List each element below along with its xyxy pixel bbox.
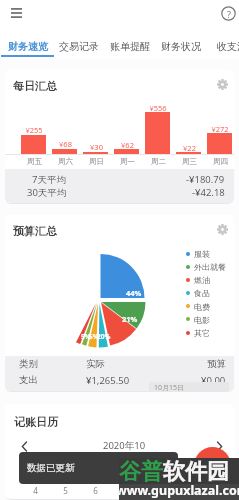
button[interactable]: 财务速览	[2, 36, 53, 57]
staticText: 周四	[213, 157, 228, 166]
staticText: 8	[153, 485, 158, 496]
staticText: 燃油	[194, 275, 210, 285]
staticText: 6	[93, 485, 98, 496]
staticText: ¥556	[149, 103, 167, 113]
staticText: 账单提醒	[110, 40, 150, 53]
button[interactable]: 收支清	[206, 36, 239, 57]
staticText: ¥62	[121, 140, 134, 150]
staticText: ¥1,265.50	[86, 374, 130, 387]
staticText: 10月15日	[154, 383, 185, 391]
staticText: 电费	[194, 302, 210, 312]
staticText: 类别	[19, 358, 38, 370]
staticText: 周五	[27, 157, 42, 166]
button[interactable]: 交易记录	[53, 36, 104, 57]
staticText: www.gupuxlazal.com	[116, 482, 239, 499]
staticText: 预算汇总	[13, 224, 57, 238]
button[interactable]: Menu	[6, 2, 27, 23]
staticText: 财务状况	[161, 40, 201, 53]
staticText: 财务速览	[8, 40, 48, 53]
staticText: 数据已更新	[27, 462, 75, 474]
staticText: 周三	[182, 157, 197, 166]
staticText: 支出	[19, 374, 38, 386]
staticText: 5%	[89, 332, 99, 341]
staticText: 9	[183, 485, 188, 496]
button[interactable]: Previous month	[13, 435, 35, 457]
staticText: ¥68	[59, 139, 72, 149]
button[interactable]: 数据已更新	[19, 452, 178, 484]
staticText: 预算	[207, 358, 226, 370]
staticText: 实际	[86, 358, 105, 370]
staticText: ¥0.00	[201, 374, 226, 387]
staticText: 服装	[194, 249, 210, 259]
staticText: 记账日历	[14, 415, 58, 429]
staticText: 5%	[81, 332, 91, 341]
button[interactable]: Add record	[194, 447, 231, 484]
staticText: 每日汇总	[13, 79, 57, 93]
staticText: 周一	[120, 157, 135, 166]
staticText: 2020年10	[103, 439, 146, 452]
staticText: 5	[63, 485, 68, 496]
button[interactable]: 账单提醒	[104, 36, 155, 57]
staticText: 谷普	[119, 458, 163, 486]
staticText: 交易记录	[59, 40, 99, 53]
staticText: 7	[123, 485, 128, 496]
staticText: 44%	[126, 288, 142, 298]
staticText: 周六	[58, 157, 73, 166]
staticText: ¥22	[183, 143, 196, 153]
staticText: 其它	[194, 328, 210, 338]
staticText: -¥180.79	[186, 173, 225, 186]
staticText: 10	[210, 485, 220, 496]
staticText: -¥42.18	[192, 186, 225, 199]
staticText: ¥255	[25, 125, 43, 135]
staticText: 电影	[194, 315, 210, 325]
button[interactable]: Next month	[208, 435, 230, 457]
staticText: 收支清	[217, 40, 239, 53]
staticText: 20%	[97, 332, 111, 341]
staticText: ¥272	[211, 124, 229, 134]
staticText: 软件园	[163, 458, 229, 486]
button[interactable]: Settings	[213, 75, 231, 93]
button[interactable]: 财务状况	[155, 36, 206, 57]
staticText: 周日	[89, 157, 104, 166]
staticText: ¥30	[90, 142, 103, 152]
staticText: 21%	[122, 314, 138, 324]
staticText: 周二	[151, 157, 166, 166]
staticText: 食品	[194, 288, 210, 298]
staticText: ?	[227, 8, 231, 20]
staticText: 4	[33, 485, 38, 496]
staticText: 7天平均	[32, 173, 66, 186]
staticText: 外出就餐	[194, 262, 226, 272]
button[interactable]: Settings	[213, 220, 231, 238]
button[interactable]: Help	[218, 3, 239, 24]
staticText: 30天平均	[27, 186, 67, 199]
